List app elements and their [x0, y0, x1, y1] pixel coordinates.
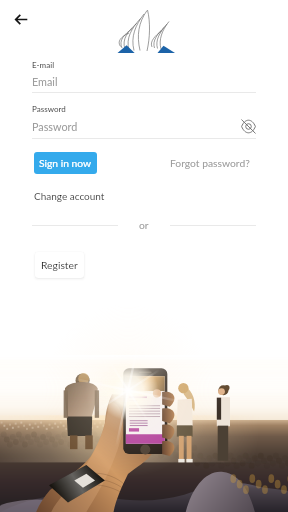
staticText: or — [139, 219, 149, 231]
button[interactable]: Show password — [241, 119, 256, 134]
staticText: Forgot password? — [170, 157, 250, 169]
staticText: Password — [32, 104, 66, 114]
staticText: E-mail — [32, 60, 55, 70]
staticText: Email — [32, 75, 58, 88]
button[interactable]: Register — [35, 252, 84, 278]
button[interactable]: Change account — [34, 190, 105, 202]
staticText: Sign in now — [39, 157, 92, 169]
button[interactable]: Back — [8, 6, 35, 33]
staticText: Password — [32, 120, 78, 133]
staticText: Register — [41, 259, 78, 271]
button[interactable]: Sign in now — [34, 152, 97, 174]
button[interactable]: Forgot password? — [170, 157, 250, 169]
staticText: Change account — [34, 190, 105, 202]
